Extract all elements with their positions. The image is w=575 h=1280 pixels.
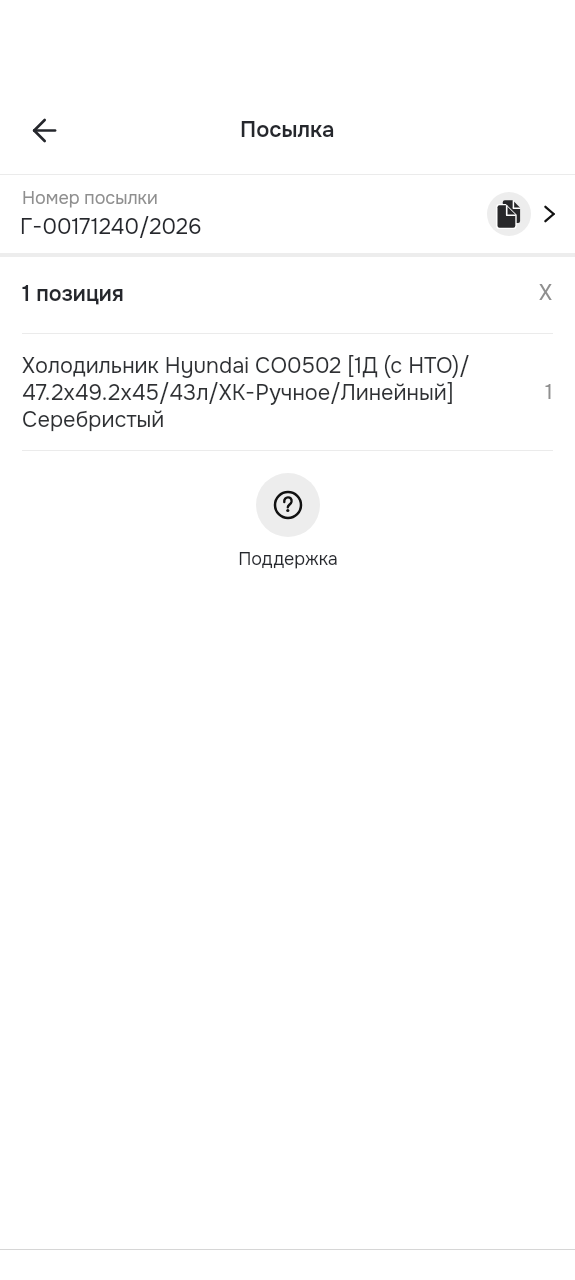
button[interactable]: Copy parcel number [487,192,531,236]
button[interactable]: Open details [536,201,562,227]
staticText: 1 позиция [22,280,124,307]
staticText: Холодильник Hyundai CO0502 [1Д (с НТО)/4… [22,352,477,434]
staticText: Посылка [240,116,335,144]
button[interactable]: Холодильник Hyundai CO0502 [1Д (с НТО)/4… [0,334,575,450]
staticText: Г-00171240/2026 [20,213,202,241]
button[interactable]: Поддержка [0,473,575,571]
button[interactable]: Номер посылки [0,175,575,253]
staticText: 1 [545,379,553,406]
staticText: X [539,279,553,307]
button[interactable]: Back [21,107,67,153]
staticText: Поддержка [238,548,338,571]
staticText: Номер посылки [22,187,158,210]
